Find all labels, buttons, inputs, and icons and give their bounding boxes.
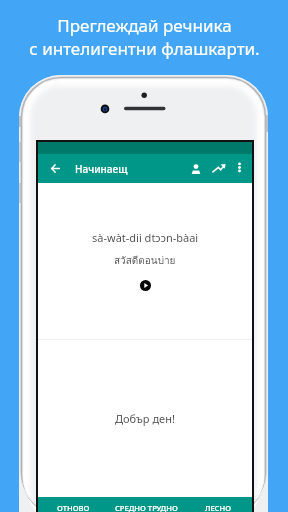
button[interactable]: Play audio bbox=[140, 280, 151, 291]
staticText: ЛЕСНО bbox=[205, 503, 231, 512]
button[interactable]: Profile bbox=[184, 157, 207, 180]
staticText: Добър ден! bbox=[115, 411, 175, 426]
staticText: สวัสดีตอนบ่าย bbox=[114, 253, 176, 269]
staticText: СРЕДНО ТРУДНО bbox=[115, 503, 178, 512]
staticText: Начинаещ bbox=[75, 162, 128, 176]
button[interactable]: ОТНОВО bbox=[38, 497, 109, 512]
button[interactable]: ЛЕСНО bbox=[183, 497, 252, 512]
button[interactable]: More options bbox=[229, 157, 249, 177]
staticText: ОТНОВО bbox=[57, 503, 90, 512]
button[interactable]: СРЕДНО ТРУДНО bbox=[109, 497, 183, 512]
staticText: с интелигентни флашкарти. bbox=[29, 37, 260, 60]
staticText: Преглеждай речника bbox=[57, 14, 232, 37]
button[interactable]: Statistics bbox=[207, 157, 230, 180]
button[interactable]: Back bbox=[44, 157, 67, 180]
staticText: sà-wàt-dii dtɔɔn-bàai bbox=[92, 230, 199, 245]
